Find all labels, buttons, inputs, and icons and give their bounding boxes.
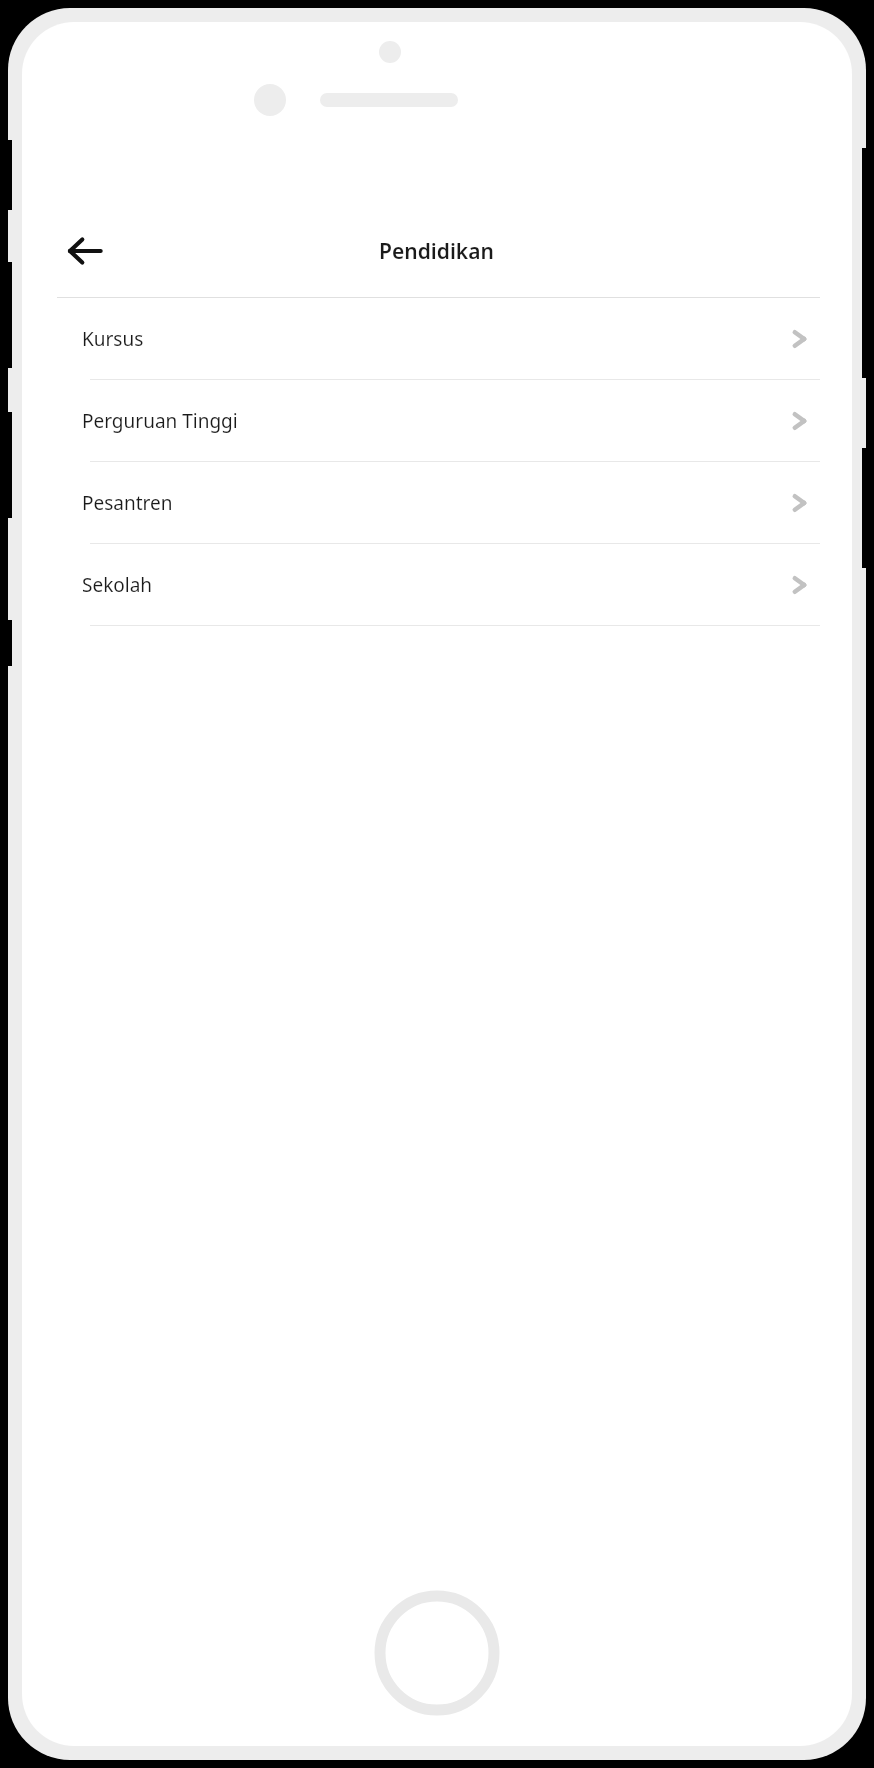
button[interactable]: Back: [57, 223, 113, 279]
staticText: Kursus: [82, 326, 144, 352]
staticText: Sekolah: [82, 572, 153, 598]
button[interactable]: Perguruan Tinggi: [57, 380, 820, 461]
staticText: Pesantren: [82, 490, 173, 516]
staticText: Perguruan Tinggi: [82, 408, 238, 434]
staticText: Pendidikan: [379, 237, 494, 266]
button[interactable]: Sekolah: [57, 544, 820, 625]
button[interactable]: Kursus: [57, 298, 820, 379]
button[interactable]: Pesantren: [57, 462, 820, 543]
